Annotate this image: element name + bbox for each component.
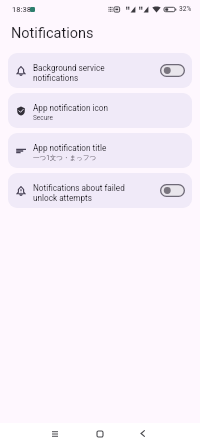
staticText: App notification title [33, 143, 107, 153]
button[interactable]: Notifications about failed unlock attemp… [8, 173, 192, 208]
button[interactable]: Back [129, 422, 156, 445]
staticText: 一つ1文つ・まっフつ [33, 153, 97, 162]
staticText: Secure [33, 113, 53, 122]
button[interactable]: Recent apps [41, 422, 68, 445]
staticText: Notifications about failed unlock attemp… [33, 183, 125, 203]
button[interactable]: Home [86, 422, 113, 445]
staticText: 32% [179, 5, 192, 13]
button[interactable]: Toggle [160, 184, 185, 197]
staticText: Background service notifications [33, 63, 105, 83]
staticText: 18:38 [12, 5, 32, 14]
staticText: App notification icon [33, 103, 109, 113]
button[interactable]: App notification title [8, 133, 192, 168]
button[interactable]: Toggle [160, 64, 185, 77]
button[interactable]: Background service notifications [8, 53, 192, 88]
button[interactable]: App notification icon [8, 93, 192, 128]
staticText: Notifications [11, 25, 94, 42]
